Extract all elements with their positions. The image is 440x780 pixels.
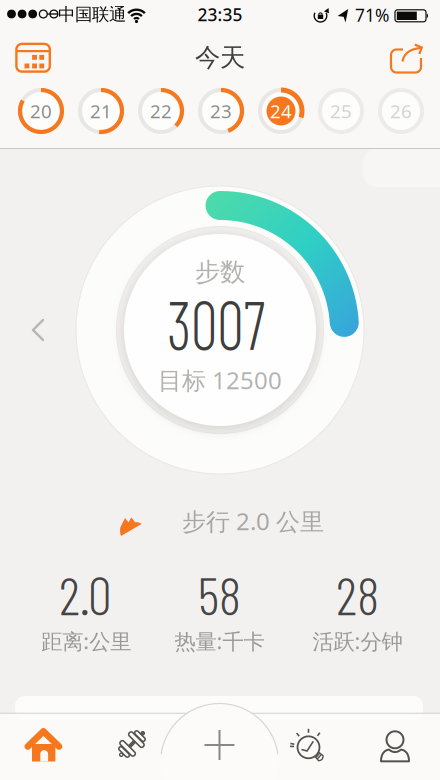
staticText: 今天 — [195, 42, 245, 73]
button[interactable]: 前一天 — [30, 318, 46, 342]
staticText: 25 — [330, 99, 352, 123]
button[interactable]: 发现 — [277, 716, 339, 772]
staticText: 距离:公里 — [41, 627, 131, 655]
button[interactable]: 主页 — [14, 718, 76, 774]
staticText: 步数 — [195, 256, 245, 287]
staticText: 26 — [390, 99, 412, 123]
button[interactable]: 24 — [256, 86, 306, 136]
staticText: 58 — [198, 562, 241, 626]
staticText: 20 — [30, 99, 52, 123]
staticText: 23 — [210, 99, 232, 123]
staticText: 目标 12500 — [158, 364, 282, 396]
staticText: 3007 — [160, 282, 271, 364]
button[interactable]: 记录 — [160, 703, 278, 780]
button[interactable]: 22 — [136, 86, 186, 136]
staticText: 28 — [336, 562, 379, 626]
staticText: 24 — [270, 99, 292, 123]
button[interactable]: 我的 — [364, 718, 426, 774]
staticText: 71% — [355, 3, 389, 26]
button[interactable]: 26 — [376, 86, 426, 136]
staticText: 2.0 — [59, 562, 112, 626]
button[interactable]: 训练 — [101, 716, 163, 772]
staticText: 23:35 — [197, 3, 242, 26]
button[interactable]: 日历 — [10, 37, 56, 79]
staticText: 热量:千卡 — [174, 627, 264, 655]
button[interactable]: 分享 — [384, 39, 430, 81]
staticText: 步行 2.0 公里 — [182, 505, 324, 537]
button[interactable]: 25 — [316, 86, 366, 136]
staticText: 活跃:分钟 — [312, 627, 402, 655]
staticText: 中国联通 — [58, 4, 126, 25]
staticText: 22 — [150, 99, 172, 123]
staticText: 21 — [90, 99, 112, 123]
button[interactable]: 21 — [76, 86, 126, 136]
button[interactable]: 20 — [16, 86, 66, 136]
button[interactable]: 23 — [196, 86, 246, 136]
